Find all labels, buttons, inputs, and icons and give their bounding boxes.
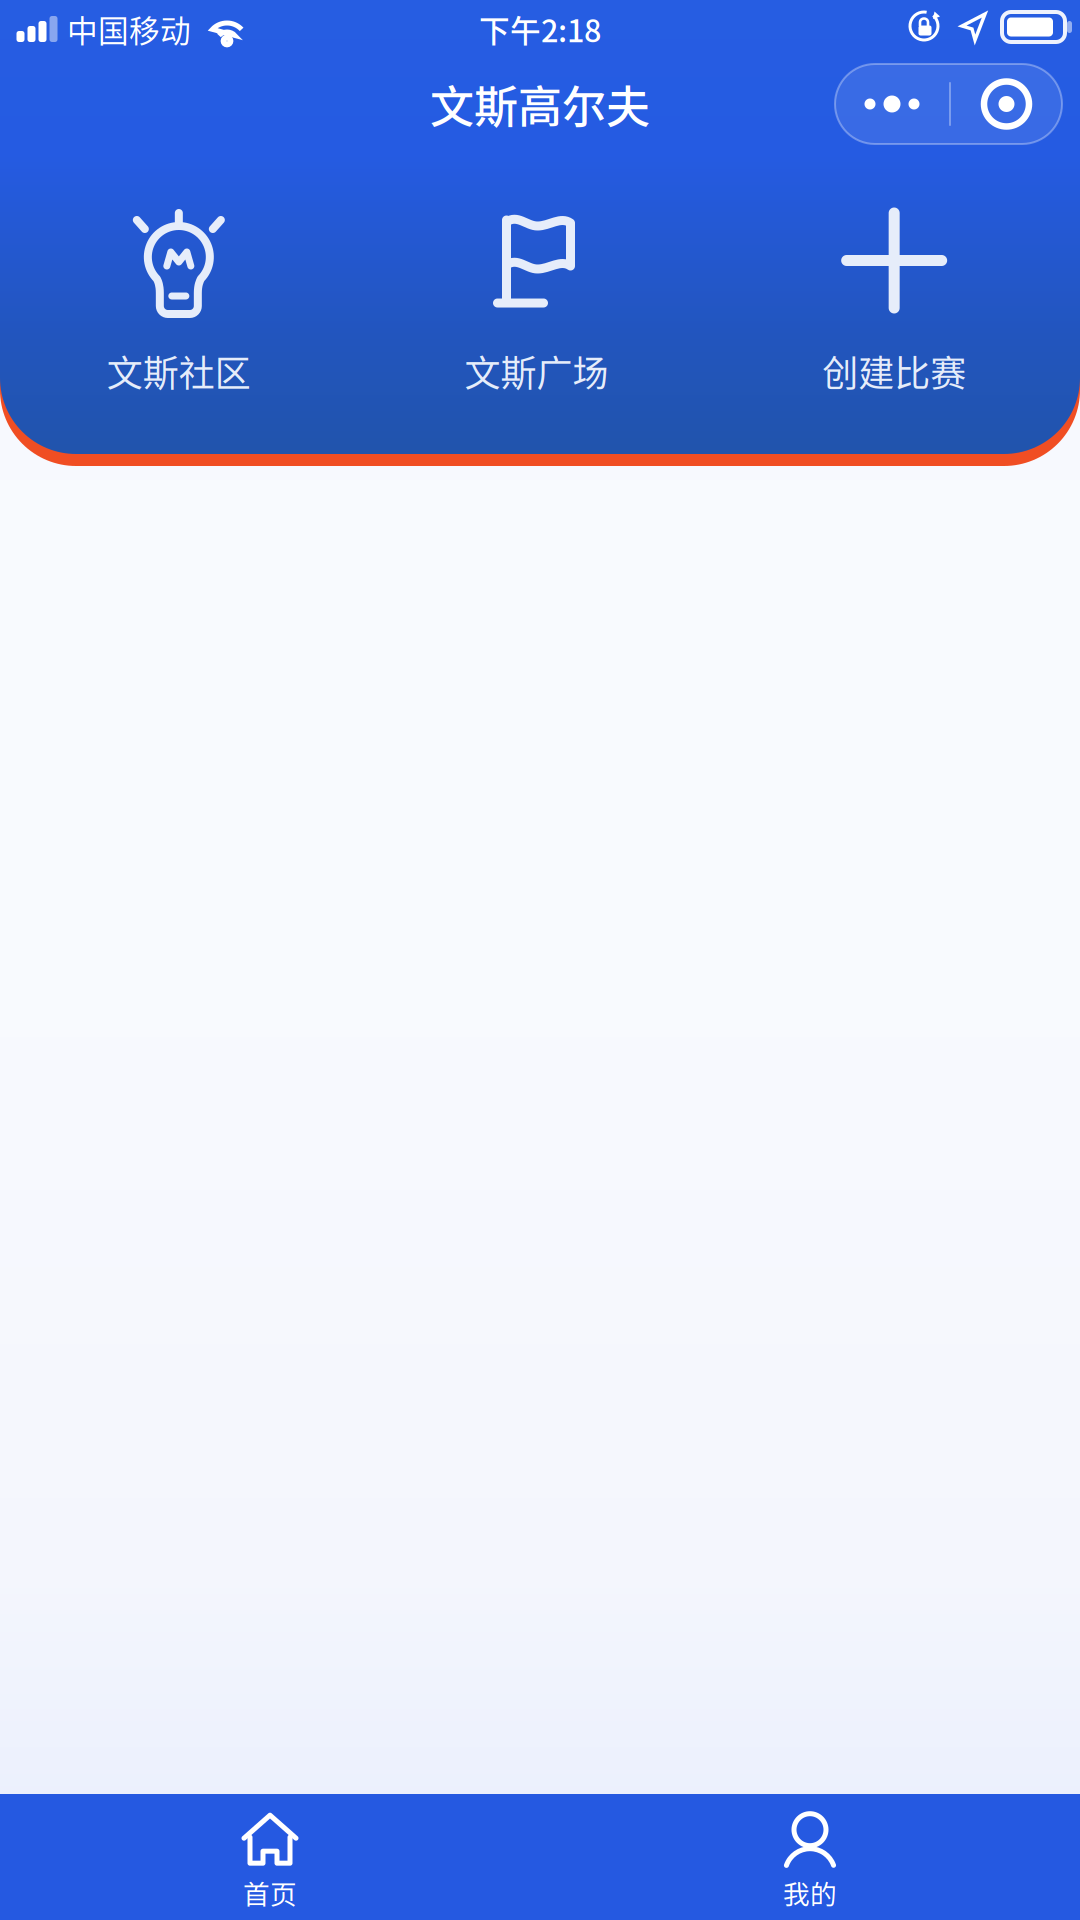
button[interactable]: 我的 [540,1790,1080,1920]
staticText: 中国移动 [67,7,191,51]
button[interactable]: 首页 [0,1790,540,1920]
staticText: 文斯社区 [107,345,251,397]
button[interactable]: 文斯社区 [0,207,358,397]
button[interactable]: 文斯广场 [358,207,715,397]
staticText: 下午2:18 [479,7,601,51]
staticText: 文斯广场 [464,345,608,397]
staticText: 创建比赛 [822,345,966,397]
button[interactable]: 创建比赛 [715,207,1073,397]
staticText: 我的 [783,1873,837,1912]
staticText: 首页 [243,1873,297,1912]
staticText: 文斯高尔夫 [430,72,650,136]
button[interactable]: 更多 [835,64,1062,144]
